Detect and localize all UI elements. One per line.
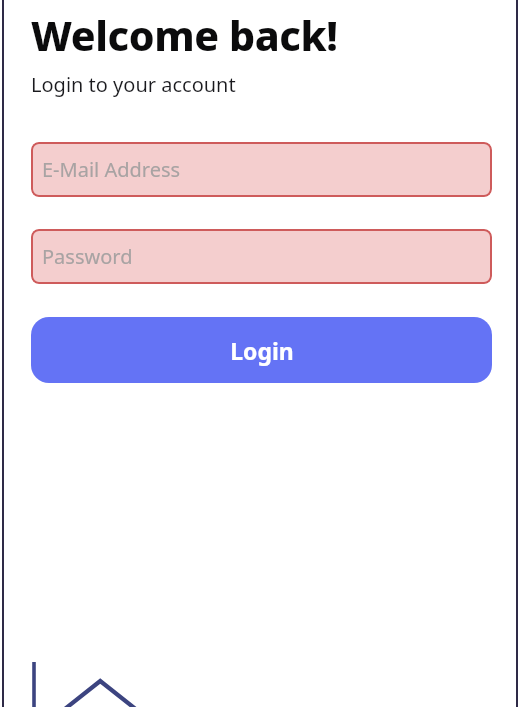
staticText: Login to your account bbox=[31, 71, 236, 98]
button[interactable]: E-Mail Address bbox=[31, 142, 492, 197]
button[interactable]: Login bbox=[31, 317, 492, 383]
staticText: E-Mail Address bbox=[42, 156, 181, 183]
staticText: Login bbox=[230, 335, 294, 366]
button[interactable]: Back bbox=[24, 659, 44, 707]
button[interactable]: Home bbox=[62, 665, 140, 707]
staticText: Welcome back! bbox=[31, 7, 338, 63]
staticText: Password bbox=[42, 243, 133, 270]
button[interactable]: Password bbox=[31, 229, 492, 284]
